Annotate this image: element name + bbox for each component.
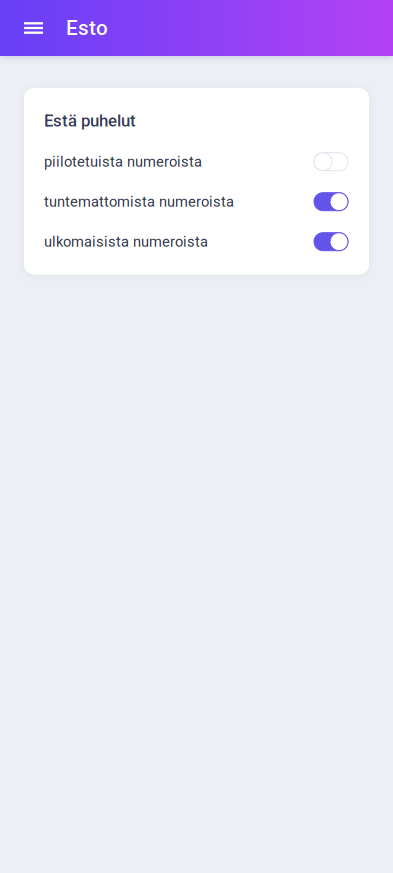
staticText: piilotetuista numeroista	[44, 153, 202, 170]
button[interactable]: Menu	[0, 0, 52, 56]
staticText: ulkomaisista numeroista	[44, 233, 208, 250]
staticText: Esto	[66, 16, 108, 40]
button[interactable]: tuntemattomista numeroista	[24, 182, 369, 222]
staticText: tuntemattomista numeroista	[44, 193, 234, 210]
button[interactable]: ulkomaisista numeroista	[24, 222, 369, 262]
staticText: Estä puhelut	[44, 111, 136, 131]
button[interactable]: piilotetuista numeroista	[24, 142, 369, 182]
